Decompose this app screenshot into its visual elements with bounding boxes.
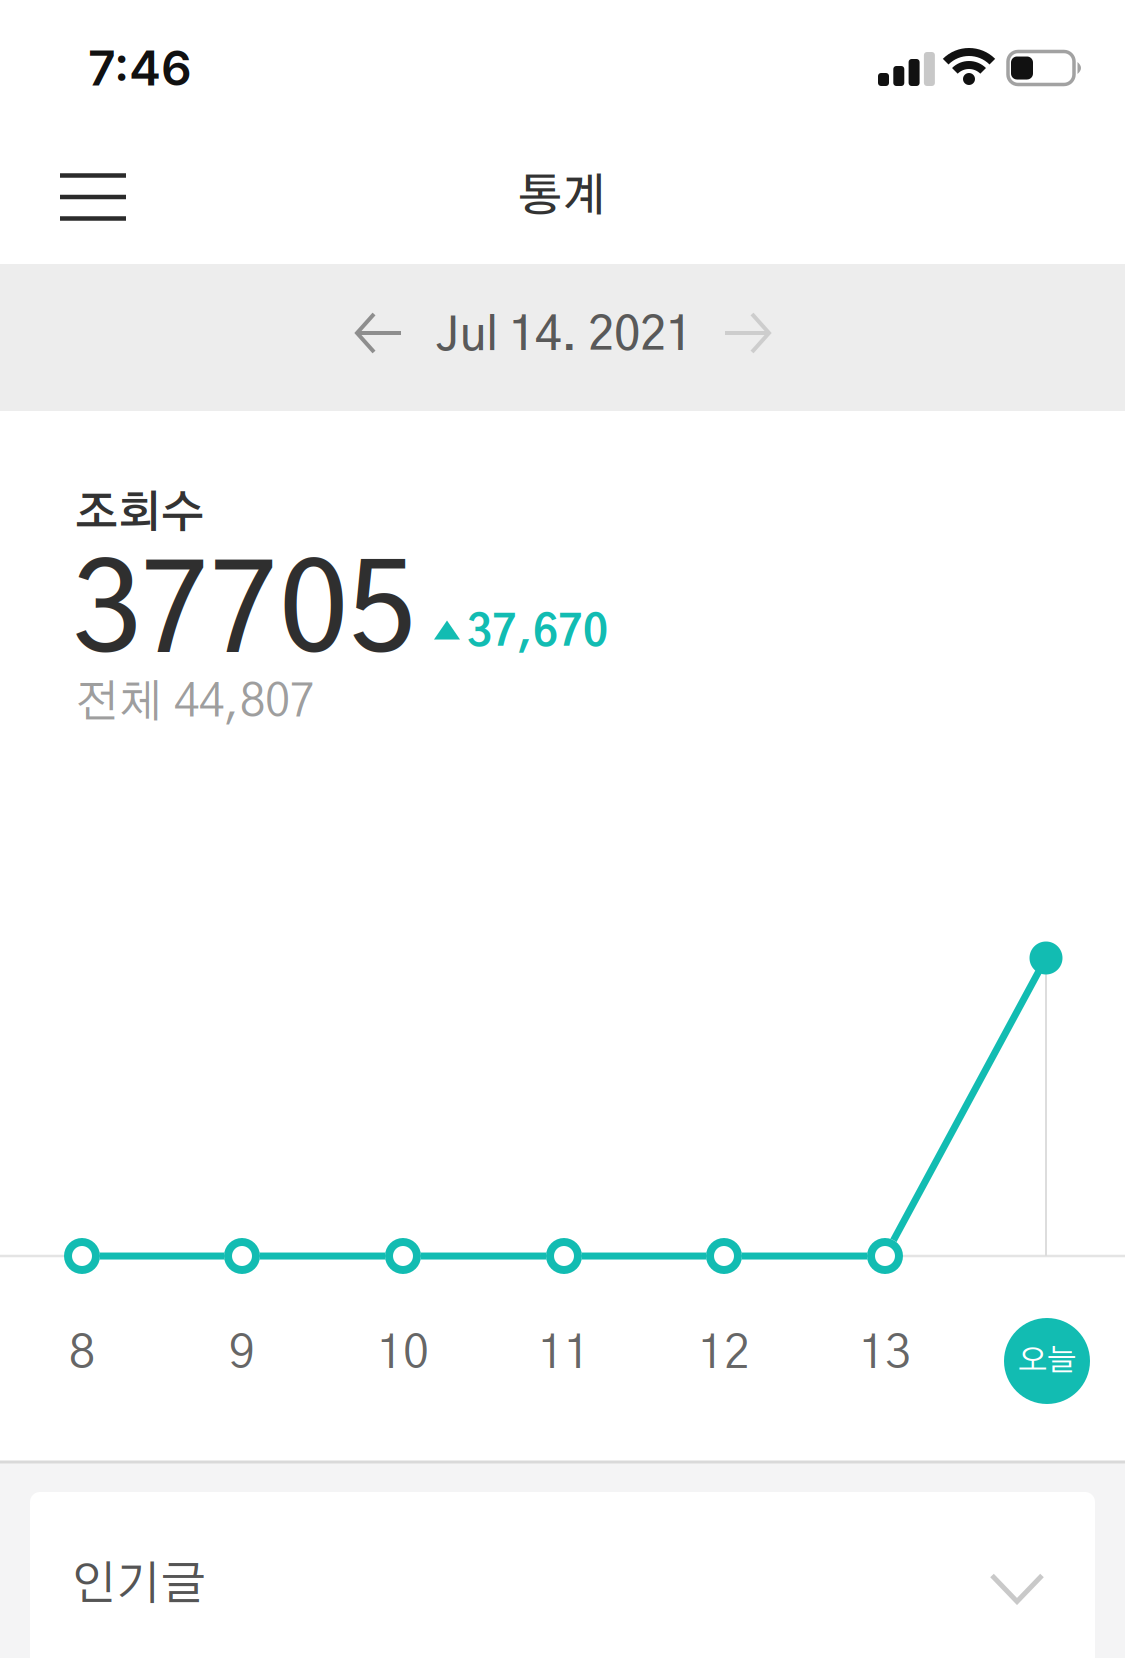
button[interactable]: 인기글 xyxy=(30,1505,1095,1658)
staticText: 8 xyxy=(69,1331,95,1377)
staticText: 37705 xyxy=(72,553,417,675)
staticText: 13 xyxy=(859,1331,911,1377)
staticText: 인기글 xyxy=(71,1562,206,1608)
staticText: 조회수 xyxy=(75,492,204,536)
staticText: 7:46 xyxy=(88,39,192,97)
staticText: 37,670 xyxy=(467,612,608,654)
staticText: 오늘 xyxy=(1018,1346,1076,1376)
button[interactable]: Next day xyxy=(709,298,787,368)
staticText: 11 xyxy=(538,1331,590,1377)
button[interactable]: Previous day xyxy=(339,298,417,368)
staticText: Jul 14. 2021 xyxy=(436,313,692,359)
button[interactable]: Menu xyxy=(50,163,136,231)
button[interactable]: 오늘 xyxy=(1004,1318,1090,1404)
staticText: 통계 xyxy=(518,174,606,220)
staticText: 12 xyxy=(698,1331,750,1377)
staticText: 9 xyxy=(229,1331,255,1377)
staticText: 전체 44,807 xyxy=(75,680,315,726)
staticText: 10 xyxy=(377,1331,429,1377)
